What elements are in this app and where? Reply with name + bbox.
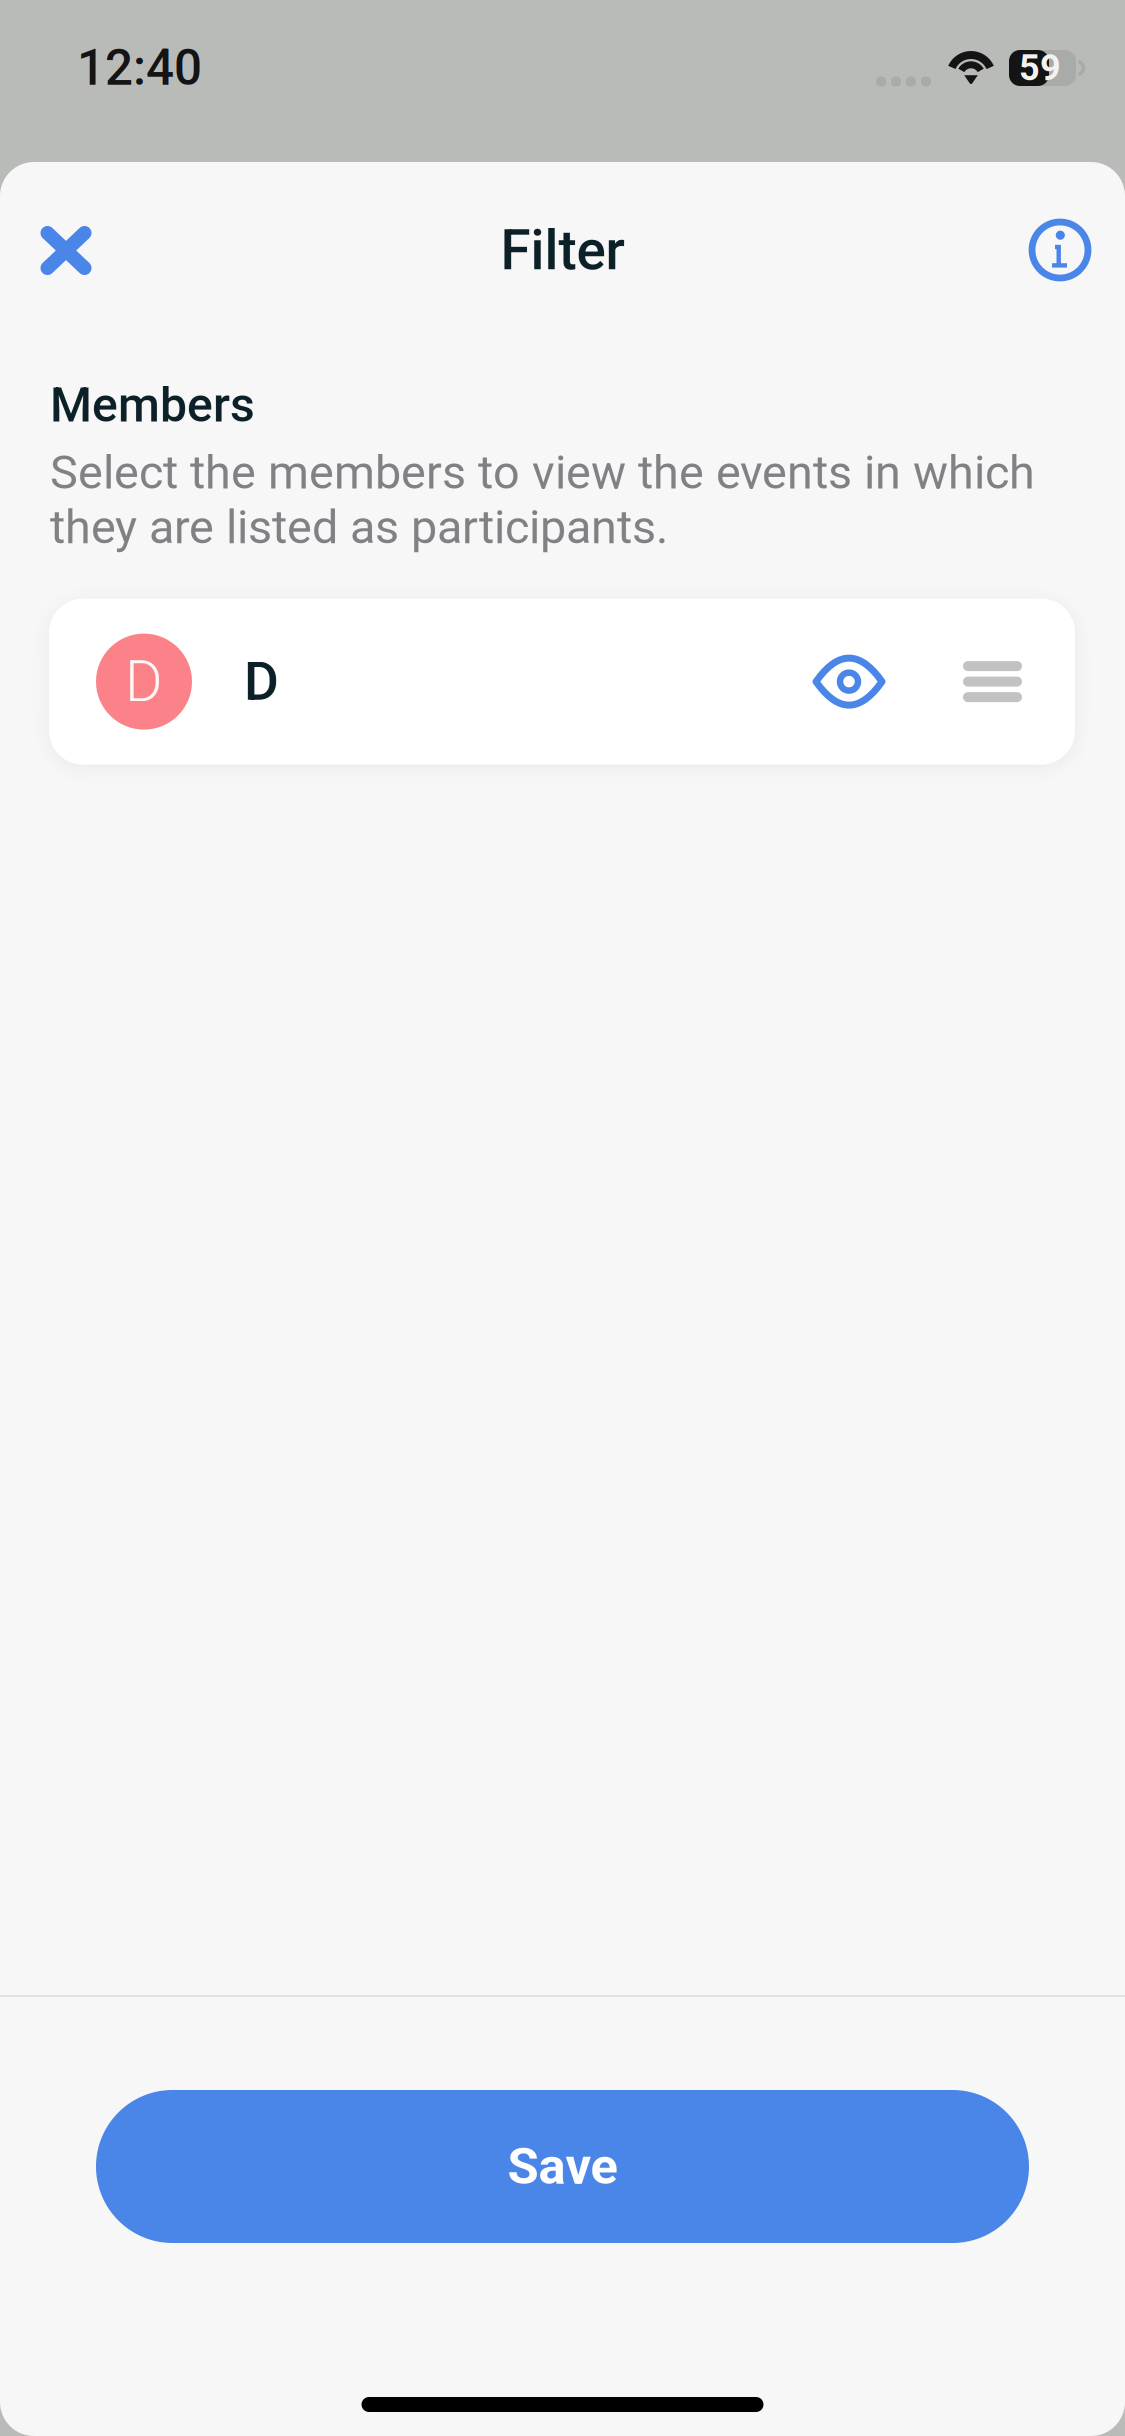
staticText: 12:40: [77, 39, 202, 97]
button[interactable]: D: [49, 599, 1075, 765]
staticText: 59: [1019, 47, 1061, 89]
staticText: Select the members to view the events in…: [50, 445, 1035, 555]
button[interactable]: Reorder: [947, 630, 1038, 734]
button[interactable]: Toggle visibility: [797, 630, 901, 734]
button[interactable]: Close: [11, 195, 121, 305]
staticText: D: [125, 648, 163, 715]
button[interactable]: Information: [1005, 195, 1115, 305]
button[interactable]: Save: [96, 2090, 1029, 2243]
staticText: Save: [507, 2137, 617, 2196]
staticText: Members: [50, 377, 255, 433]
staticText: Filter: [500, 218, 624, 283]
staticText: D: [244, 650, 279, 713]
